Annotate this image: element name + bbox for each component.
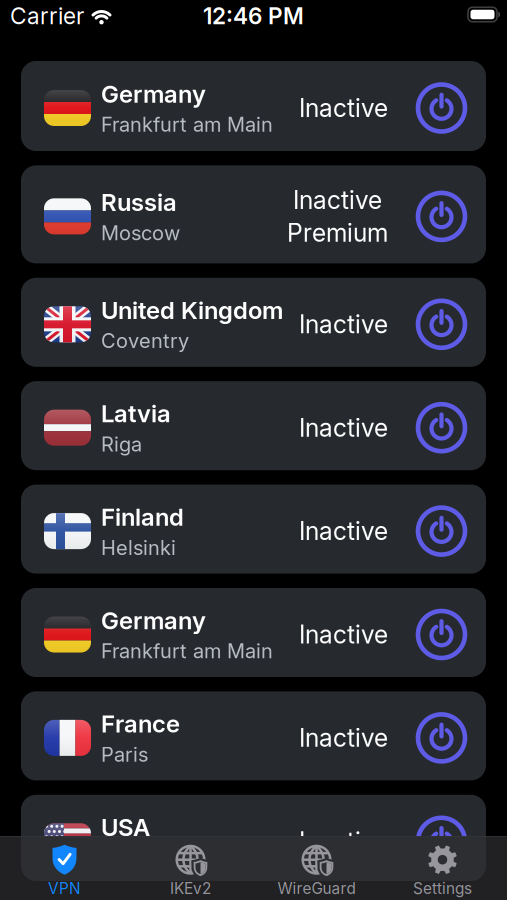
button[interactable]: Latvia [21, 381, 486, 470]
staticText: Paris [101, 742, 148, 766]
button[interactable]: USA [21, 795, 486, 884]
button[interactable]: Germany [21, 61, 486, 151]
staticText: 12:46 PM [203, 2, 304, 30]
staticText: Inactive [299, 826, 388, 856]
staticText: Premium [287, 218, 388, 248]
staticText: Inactive [299, 413, 388, 443]
button[interactable]: Connect [418, 611, 465, 658]
button[interactable]: Connect [418, 818, 465, 865]
button[interactable]: WireGuard [253, 842, 379, 900]
staticText: Germany [101, 606, 206, 635]
staticText: New York [101, 846, 192, 870]
staticText: Moscow [101, 221, 180, 245]
staticText: Inactive [299, 516, 388, 546]
staticText: USA [101, 813, 150, 842]
button[interactable]: VPN [1, 842, 127, 900]
button[interactable]: Connect [418, 404, 465, 451]
staticText: Helsinki [101, 535, 176, 560]
staticText: Settings [413, 879, 472, 898]
button[interactable]: Connect [418, 714, 465, 761]
button[interactable]: Russia [21, 165, 486, 263]
staticText: IKEv2 [170, 879, 211, 898]
staticText: Russia [101, 188, 177, 217]
staticText: Finland [101, 502, 184, 531]
staticText: United Kingdom [101, 296, 283, 325]
button[interactable]: IKEv2 [127, 842, 253, 900]
staticText: Riga [101, 432, 142, 456]
button[interactable]: France [21, 691, 486, 780]
staticText: Inactive [293, 185, 382, 215]
staticText: France [101, 709, 180, 738]
staticText: Carrier [10, 2, 84, 30]
button[interactable]: Settings [379, 842, 505, 900]
staticText: Inactive [299, 620, 388, 649]
staticText: Coventry [101, 329, 189, 353]
button[interactable]: Connect [418, 193, 465, 240]
button[interactable]: Finland [21, 485, 486, 574]
staticText: Frankfurt am Main [101, 112, 273, 137]
staticText: VPN [48, 879, 81, 898]
staticText: Latvia [101, 399, 171, 428]
staticText: Inactive [299, 93, 388, 123]
button[interactable]: Connect [418, 84, 465, 131]
button[interactable]: Connect [418, 301, 465, 348]
button[interactable]: Germany [21, 588, 486, 677]
staticText: Inactive [299, 723, 388, 753]
staticText: Germany [101, 79, 206, 108]
button[interactable]: Connect [418, 508, 465, 555]
button[interactable]: United Kingdom [21, 278, 486, 367]
staticText: Frankfurt am Main [101, 639, 273, 663]
staticText: Inactive [299, 309, 388, 339]
staticText: WireGuard [277, 879, 355, 898]
